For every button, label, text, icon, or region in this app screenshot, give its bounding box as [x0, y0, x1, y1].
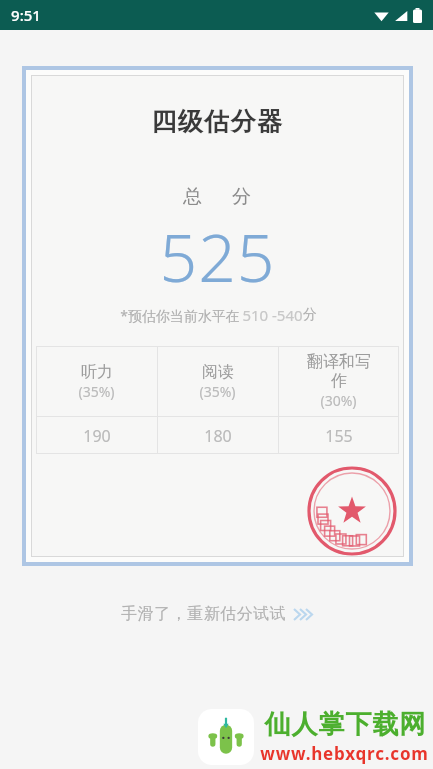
staticText: 190 [83, 425, 111, 447]
staticText: 525 [159, 211, 276, 301]
staticText: 分 [303, 306, 317, 324]
staticText: 翻译和写 作 [307, 352, 371, 391]
staticText: 阅读 [202, 362, 234, 382]
staticText: 仙人掌下载网 [264, 708, 426, 741]
staticText: 手滑了，重新估分试试 [121, 604, 286, 624]
staticText: 总 分 [183, 183, 253, 209]
staticText: www.hebxqrc.com [260, 742, 429, 765]
staticText: 155 [325, 425, 353, 447]
staticText: 四级估分器 [151, 106, 284, 137]
staticText: 180 [204, 425, 232, 447]
staticText: 510 -540 [242, 305, 303, 325]
staticText: 听力 [81, 362, 113, 382]
staticText: 9:51 [11, 5, 41, 25]
staticText: (30%) [320, 391, 357, 410]
staticText: *预估你当前水平在 [118, 306, 242, 325]
staticText: (35%) [78, 382, 115, 401]
other: Official seal [304, 463, 400, 559]
staticText: (35%) [199, 382, 236, 401]
button[interactable]: 手滑了，重新估分试试 [109, 598, 325, 630]
